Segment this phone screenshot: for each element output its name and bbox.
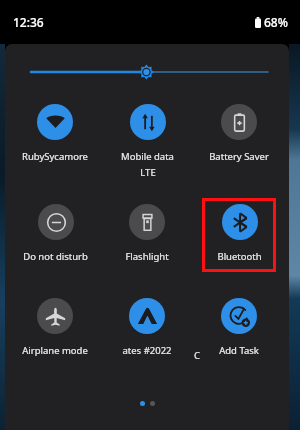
staticText: 12:36 [13,14,44,30]
button[interactable]: Brightness [5,62,289,82]
button[interactable]: Do not disturb [21,199,90,267]
staticText: C [194,349,201,362]
staticText: Flashlight [125,250,169,263]
button[interactable]: Flashlight [123,199,171,267]
button[interactable]: ates #2022 [120,293,174,361]
staticText: Battery Saver [209,150,269,163]
button[interactable]: Airplane mode [20,293,90,361]
staticText: Mobile data [121,150,174,163]
button[interactable]: Add Task [217,293,261,361]
staticText: LTE [140,166,156,179]
staticText: Airplane mode [22,344,88,357]
button[interactable]: RubySycamore [20,99,90,167]
staticText: RubySycamore [22,150,88,163]
button[interactable]: Bluetooth [215,199,264,267]
staticText: Do not disturb [23,250,88,263]
button[interactable]: Mobile data [119,99,176,183]
button[interactable]: Battery Saver [207,99,271,167]
staticText: Add Task [219,344,259,357]
staticText: Bluetooth [217,250,262,263]
staticText: ates #2022 [122,344,172,357]
staticText: 68% [264,14,288,30]
